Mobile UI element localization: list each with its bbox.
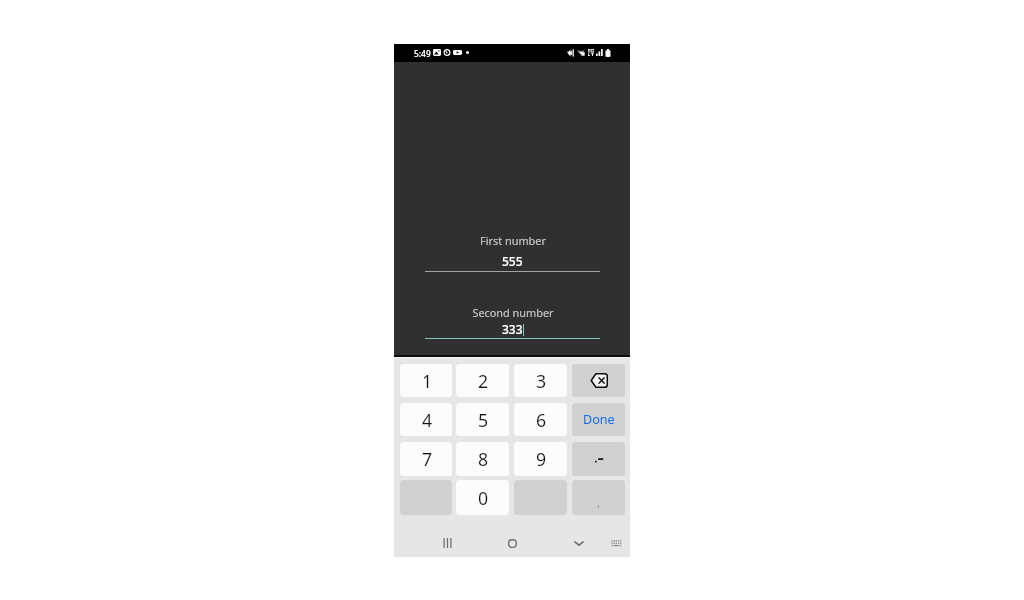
button[interactable]: Change keyboard bbox=[603, 530, 629, 556]
button[interactable]: 1 bbox=[400, 364, 452, 397]
staticText: 333 bbox=[502, 321, 523, 337]
button[interactable]: Done bbox=[572, 403, 625, 436]
button[interactable]: 8 bbox=[456, 442, 509, 476]
button[interactable]: 5 bbox=[456, 403, 509, 436]
button[interactable]: 9 bbox=[514, 442, 567, 476]
staticText: 1 bbox=[422, 369, 433, 393]
button[interactable]: 0 bbox=[456, 480, 509, 515]
staticText: First number bbox=[480, 233, 546, 248]
staticText: 3 bbox=[536, 369, 547, 393]
staticText: 0 bbox=[478, 486, 489, 510]
staticText: 2 bbox=[478, 369, 489, 393]
button[interactable]: First number bbox=[425, 230, 600, 273]
button[interactable]: 2 bbox=[456, 364, 509, 397]
staticText: 9 bbox=[536, 447, 547, 471]
staticText: , bbox=[597, 495, 600, 510]
button[interactable]: Backspace bbox=[572, 364, 625, 397]
staticText: Done bbox=[583, 411, 615, 428]
button[interactable]: Hide keyboard bbox=[566, 530, 592, 556]
staticText: 5 bbox=[478, 408, 489, 432]
staticText: 5:49 bbox=[414, 48, 431, 59]
staticText: 4 bbox=[422, 408, 433, 432]
button[interactable]: 7 bbox=[400, 442, 452, 476]
button[interactable]: 3 bbox=[514, 364, 567, 397]
button[interactable]: 6 bbox=[514, 403, 567, 436]
staticText: Second number bbox=[472, 305, 554, 320]
staticText: 555 bbox=[502, 253, 523, 269]
staticText: 8 bbox=[478, 447, 489, 471]
staticText: 7 bbox=[422, 447, 433, 471]
staticText: 6 bbox=[536, 408, 547, 432]
button[interactable]: Recents bbox=[434, 530, 460, 556]
button[interactable]: Home bbox=[499, 530, 525, 556]
button[interactable]: Dot dash bbox=[572, 442, 625, 476]
button[interactable]: 4 bbox=[400, 403, 452, 436]
button[interactable]: Second number bbox=[425, 302, 600, 340]
